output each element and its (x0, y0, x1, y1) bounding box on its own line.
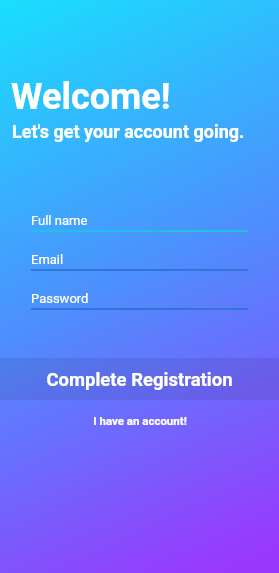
staticText: I have an account! (93, 414, 187, 427)
staticText: Complete Registration (46, 369, 233, 391)
button[interactable]: Password (31, 291, 248, 330)
button[interactable]: Complete Registration (0, 358, 279, 400)
staticText: Full name (31, 213, 88, 228)
staticText: Welcome! (11, 76, 171, 118)
button[interactable]: I have an account! (0, 409, 279, 431)
staticText: Password (31, 291, 89, 306)
staticText: Email (31, 252, 64, 267)
button[interactable]: Full name (31, 213, 248, 252)
button[interactable]: Email (31, 252, 248, 291)
staticText: Let's get your account going. (12, 121, 245, 142)
